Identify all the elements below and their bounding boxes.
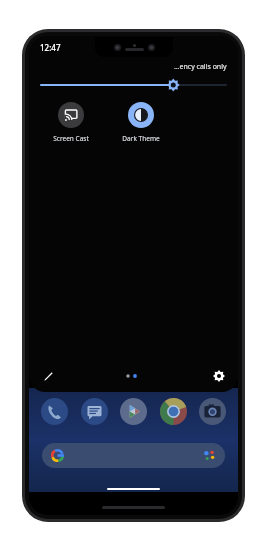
button[interactable]: Google search bbox=[42, 443, 225, 468]
button[interactable]: Home bbox=[107, 488, 160, 490]
button[interactable]: Camera bbox=[197, 396, 228, 427]
button[interactable]: Settings bbox=[211, 368, 227, 384]
staticText: Screen Cast bbox=[53, 134, 89, 143]
button[interactable]: Brightness bbox=[41, 75, 226, 95]
staticText: …ency calls only bbox=[174, 62, 227, 72]
button[interactable]: Chrome bbox=[158, 396, 189, 427]
staticText: 12:47 bbox=[40, 42, 61, 53]
button[interactable]: Phone bbox=[39, 396, 70, 427]
button[interactable]: Messages bbox=[79, 396, 110, 427]
staticText: Dark Theme bbox=[122, 134, 160, 143]
button[interactable]: Screen Cast bbox=[43, 102, 99, 143]
button[interactable]: Play Store bbox=[118, 396, 149, 427]
button[interactable]: Dark Theme bbox=[113, 102, 169, 143]
button[interactable]: Edit tiles bbox=[40, 368, 56, 384]
